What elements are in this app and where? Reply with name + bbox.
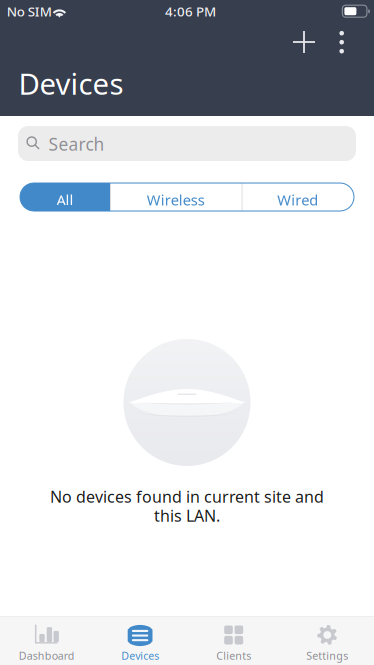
button[interactable]: Settings [280, 616, 374, 665]
staticText: Clients [216, 648, 251, 663]
staticText: Wireless [147, 190, 205, 209]
staticText: No devices found in current site and [50, 486, 324, 507]
button[interactable]: More options [324, 20, 360, 64]
staticText: All [56, 190, 73, 209]
button[interactable]: Add device [271, 20, 315, 64]
staticText: Settings [306, 648, 348, 663]
staticText: Dashboard [19, 648, 75, 663]
button[interactable]: Devices [93, 616, 187, 665]
staticText: this LAN. [154, 505, 220, 526]
staticText: 4:06 PM [165, 2, 216, 20]
button[interactable]: Dashboard [0, 616, 93, 665]
staticText: Search [48, 132, 104, 155]
staticText: Devices [18, 64, 123, 103]
staticText: No SIM [7, 2, 52, 20]
staticText: Devices [121, 648, 159, 663]
staticText: Wired [277, 190, 318, 209]
button[interactable]: Search [18, 126, 356, 161]
button[interactable]: Clients [187, 616, 280, 665]
